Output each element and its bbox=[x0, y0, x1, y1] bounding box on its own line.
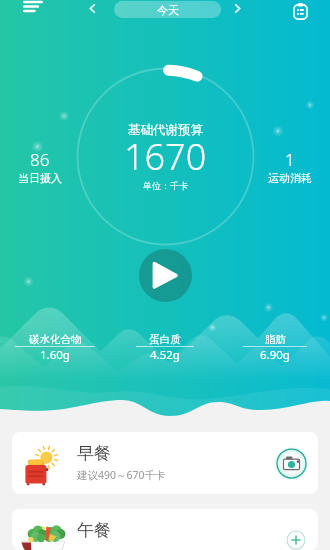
staticText: 建议490～670千卡 bbox=[77, 468, 166, 482]
button[interactable]: 午餐 bbox=[12, 509, 318, 550]
button[interactable]: 今天 bbox=[114, 1, 221, 18]
staticText: 1 bbox=[285, 148, 295, 171]
staticText: 早餐 bbox=[77, 443, 111, 464]
staticText: 脂肪 bbox=[265, 333, 286, 346]
button[interactable]: Records bbox=[285, 0, 315, 22]
button[interactable]: 早餐 bbox=[12, 432, 318, 494]
staticText: 基础代谢预算 bbox=[128, 122, 203, 138]
staticText: 当日摄入 bbox=[18, 171, 62, 185]
staticText: 86 bbox=[30, 148, 50, 171]
button[interactable]: Start exercise bbox=[139, 249, 192, 302]
button[interactable]: Menu bbox=[13, 0, 53, 22]
button[interactable]: Add food bbox=[286, 530, 306, 550]
staticText: 1.60g bbox=[40, 347, 70, 363]
button[interactable]: Take photo of meal bbox=[274, 446, 309, 481]
button[interactable]: Next day bbox=[226, 0, 248, 16]
staticText: 1670 bbox=[124, 132, 207, 181]
staticText: 今天 bbox=[157, 3, 179, 17]
staticText: 4.52g bbox=[150, 347, 180, 363]
staticText: 6.90g bbox=[260, 347, 290, 363]
staticText: 运动消耗 bbox=[268, 171, 312, 185]
button[interactable]: Previous day bbox=[81, 0, 103, 16]
staticText: 午餐 bbox=[77, 520, 111, 541]
staticText: 蛋白质 bbox=[149, 333, 181, 346]
staticText: 单位：千卡 bbox=[143, 180, 188, 191]
staticText: 碳水化合物 bbox=[29, 333, 82, 346]
